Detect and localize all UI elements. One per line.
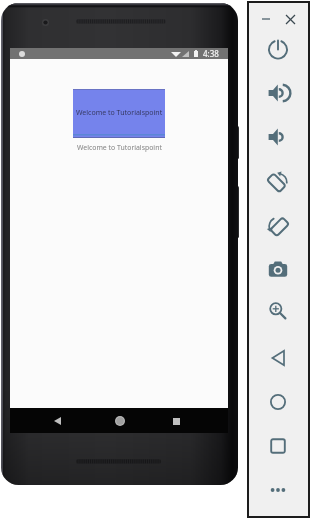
button[interactable]: Rotate right <box>262 209 294 241</box>
button[interactable]: Minimize <box>257 10 275 28</box>
staticText: Welcome to Tutorialspoint <box>76 108 163 118</box>
button[interactable]: Back <box>262 342 294 374</box>
button[interactable]: Home <box>110 411 130 431</box>
button[interactable]: Take screenshot <box>262 253 294 285</box>
button[interactable]: Volume down <box>262 121 294 153</box>
button[interactable]: Close <box>281 10 299 28</box>
button[interactable]: Back <box>47 411 67 431</box>
button[interactable]: Power <box>262 33 294 65</box>
staticText: 4:38 <box>203 48 219 59</box>
button[interactable]: Overview <box>262 430 294 462</box>
button[interactable]: More <box>262 474 294 506</box>
button[interactable]: Recents <box>166 411 186 431</box>
staticText: Welcome to Tutorialspoint <box>77 143 162 152</box>
button[interactable]: Home <box>262 386 294 418</box>
button[interactable]: Volume up <box>262 77 294 109</box>
button[interactable]: Welcome to Tutorialspoint <box>73 89 165 138</box>
button[interactable]: Zoom <box>262 295 294 327</box>
button[interactable]: Rotate left <box>262 165 294 197</box>
